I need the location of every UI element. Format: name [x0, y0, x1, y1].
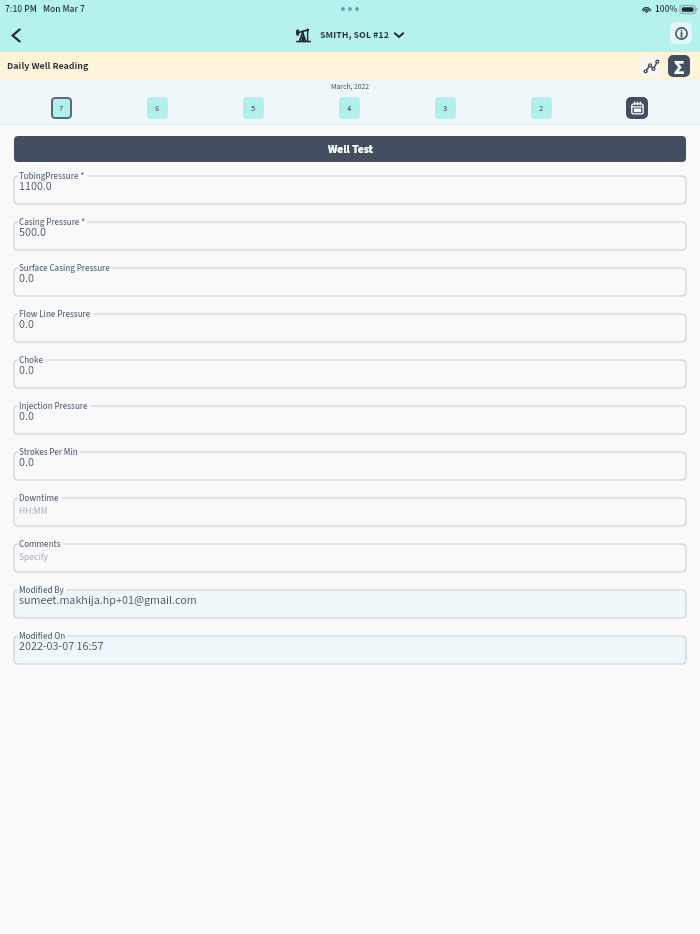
button[interactable]: Info [670, 22, 692, 44]
staticText: March, 2022 [331, 81, 370, 92]
button[interactable]: 0.0 [14, 314, 686, 342]
staticText: Flow Line Pressure [19, 308, 91, 321]
staticText: Comments [19, 538, 61, 551]
button[interactable]: 7 [51, 97, 72, 119]
staticText: Modified On [19, 630, 66, 643]
button[interactable]: Well Test [14, 136, 686, 162]
staticText: Specify [19, 550, 48, 564]
staticText: 500.0 [19, 224, 46, 241]
button[interactable]: Specify [14, 544, 686, 572]
staticText: HH:MM [19, 504, 48, 518]
staticText: Modified By [19, 584, 64, 597]
staticText: 0.0 [19, 362, 34, 379]
staticText: Well Test [328, 141, 373, 157]
staticText: Daily Well Reading [7, 59, 89, 73]
button[interactable]: 1100.0 [14, 176, 686, 204]
button[interactable]: sumeet.makhija.hp+01@gmail.com [14, 590, 686, 618]
button[interactable]: Calendar [626, 97, 648, 119]
button[interactable]: SMITH, SOL #12 [296, 27, 404, 43]
button[interactable]: 6 [147, 97, 168, 119]
staticText: 2022-03-07 16:57 [19, 638, 104, 655]
staticText: TubingPressure * [19, 170, 85, 183]
button[interactable]: Summary [668, 55, 690, 77]
staticText: 100% [655, 2, 678, 16]
staticText: 7 [59, 102, 64, 114]
staticText: SMITH, SOL #12 [320, 28, 389, 42]
button[interactable]: 2022-03-07 16:57 [14, 636, 686, 664]
staticText: 2 [539, 102, 544, 114]
staticText: Casing Pressure * [19, 216, 85, 229]
staticText: 1100.0 [19, 178, 52, 195]
button[interactable]: 0.0 [14, 360, 686, 388]
button[interactable]: 5 [243, 97, 264, 119]
staticText: 0.0 [19, 316, 34, 333]
button[interactable]: Back [3, 22, 29, 48]
button[interactable]: 2 [531, 97, 552, 119]
staticText: Surface Casing Pressure [19, 262, 110, 275]
button[interactable]: HH:MM [14, 498, 686, 526]
staticText: 0.0 [19, 270, 34, 287]
staticText: 0.0 [19, 454, 34, 471]
staticText: 3 [443, 102, 448, 114]
button[interactable]: 0.0 [14, 406, 686, 434]
staticText: 7:10 PM [5, 2, 37, 16]
button[interactable]: 500.0 [14, 222, 686, 250]
staticText: Mon Mar 7 [43, 2, 85, 16]
button[interactable]: 0.0 [14, 452, 686, 480]
staticText: Downtime [19, 492, 59, 505]
staticText: Choke [19, 354, 43, 367]
staticText: 4 [347, 102, 352, 114]
button[interactable]: 0.0 [14, 268, 686, 296]
button[interactable]: 3 [435, 97, 456, 119]
staticText: 0.0 [19, 408, 34, 425]
staticText: 6 [155, 102, 160, 114]
button[interactable]: 4 [339, 97, 360, 119]
staticText: sumeet.makhija.hp+01@gmail.com [19, 592, 197, 609]
staticText: Strokes Per Min [19, 446, 78, 459]
staticText: Injection Pressure [19, 400, 88, 413]
button[interactable]: Chart [640, 55, 662, 77]
staticText: Σ [674, 55, 685, 77]
staticText: 5 [251, 102, 256, 114]
